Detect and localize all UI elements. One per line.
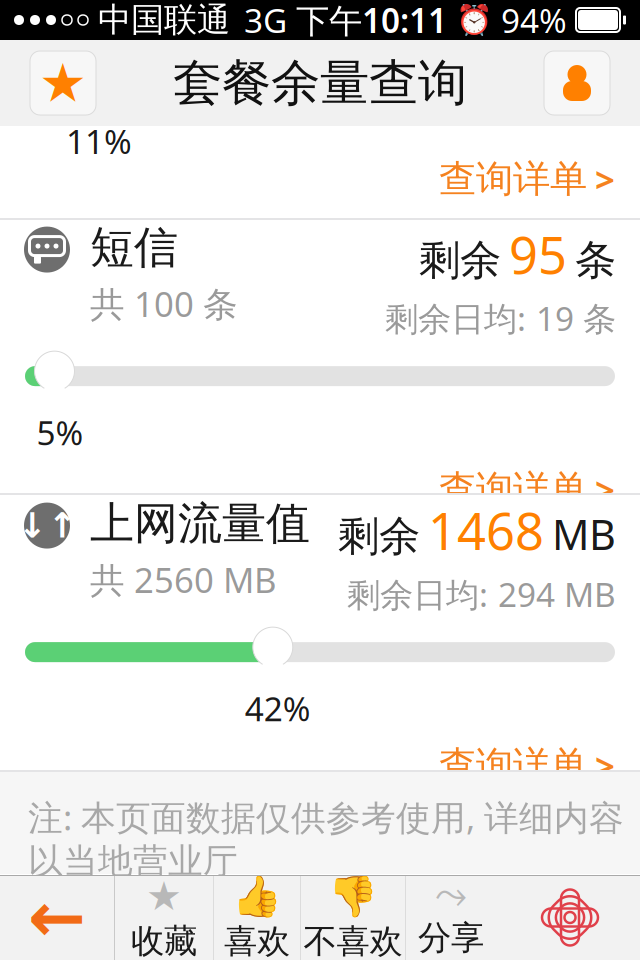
staticText: ⏰ xyxy=(456,3,493,37)
staticText: 95 xyxy=(509,221,567,288)
staticText: 👍 xyxy=(232,873,282,919)
staticText: 收藏 xyxy=(131,921,197,960)
staticText: ↑ xyxy=(47,506,76,545)
staticText: 短信 xyxy=(90,221,178,275)
staticText: 剩余日均: xyxy=(385,296,526,340)
staticText: 共 100 条 xyxy=(90,281,238,327)
button[interactable]: ⤳ xyxy=(406,875,496,960)
staticText: 不喜欢 xyxy=(303,921,402,960)
button[interactable]: ★ xyxy=(115,875,213,960)
staticText: 查询详单 xyxy=(439,466,587,512)
button[interactable]: 中国联通 xyxy=(500,875,640,960)
staticText: > xyxy=(595,742,615,788)
staticText: ↓ xyxy=(17,506,46,545)
staticText: 套餐余量查询 xyxy=(173,53,467,113)
staticText: 下午10:11 xyxy=(296,0,447,42)
button[interactable]: 查询详单 xyxy=(439,736,640,794)
staticText: > xyxy=(595,466,615,512)
staticText: 查询内容为准。 xyxy=(28,889,273,931)
staticText: 11% xyxy=(66,119,132,163)
staticText: 查询详单 xyxy=(439,156,587,202)
staticText: 94% xyxy=(501,0,567,42)
staticText: ⤳ xyxy=(435,876,467,915)
button[interactable]: 查询详单 xyxy=(439,150,640,208)
staticText: 注: 本页面数据仅供参考使用, 详细内容以当地营业厅 xyxy=(28,794,624,883)
staticText: 剩余 xyxy=(338,511,420,561)
staticText: ★ xyxy=(146,873,182,919)
staticText: 294 MB xyxy=(498,572,616,616)
staticText: 分享 xyxy=(418,917,484,958)
button[interactable]: 👎 xyxy=(301,875,405,960)
staticText: 上网流量值 xyxy=(90,497,310,551)
button[interactable]: 查询详单 xyxy=(439,460,640,518)
button[interactable]: 收藏 xyxy=(30,51,96,115)
staticText: 查询详单 xyxy=(439,742,587,788)
button[interactable]: 返回 xyxy=(0,875,114,960)
staticText: 5% xyxy=(36,410,83,454)
staticText: 42% xyxy=(245,686,311,730)
staticText: 剩余日均: xyxy=(347,572,488,616)
button[interactable]: 个人中心 xyxy=(544,51,610,115)
staticText: 3G xyxy=(244,0,287,42)
staticText: 1468 xyxy=(428,497,544,564)
staticText: 19 条 xyxy=(536,296,616,340)
staticText: ★ xyxy=(39,53,87,113)
staticText: 喜欢 xyxy=(224,921,290,960)
staticText: 共 2560 MB xyxy=(90,557,277,603)
staticText: > xyxy=(595,156,615,202)
staticText: 中国联通 xyxy=(98,0,230,40)
staticText: ← xyxy=(28,878,86,957)
staticText: MB xyxy=(552,506,616,561)
button[interactable]: 👍 xyxy=(214,875,300,960)
staticText: 条 xyxy=(575,235,616,285)
staticText: 剩余 xyxy=(419,235,501,285)
staticText: 👎 xyxy=(328,873,378,919)
